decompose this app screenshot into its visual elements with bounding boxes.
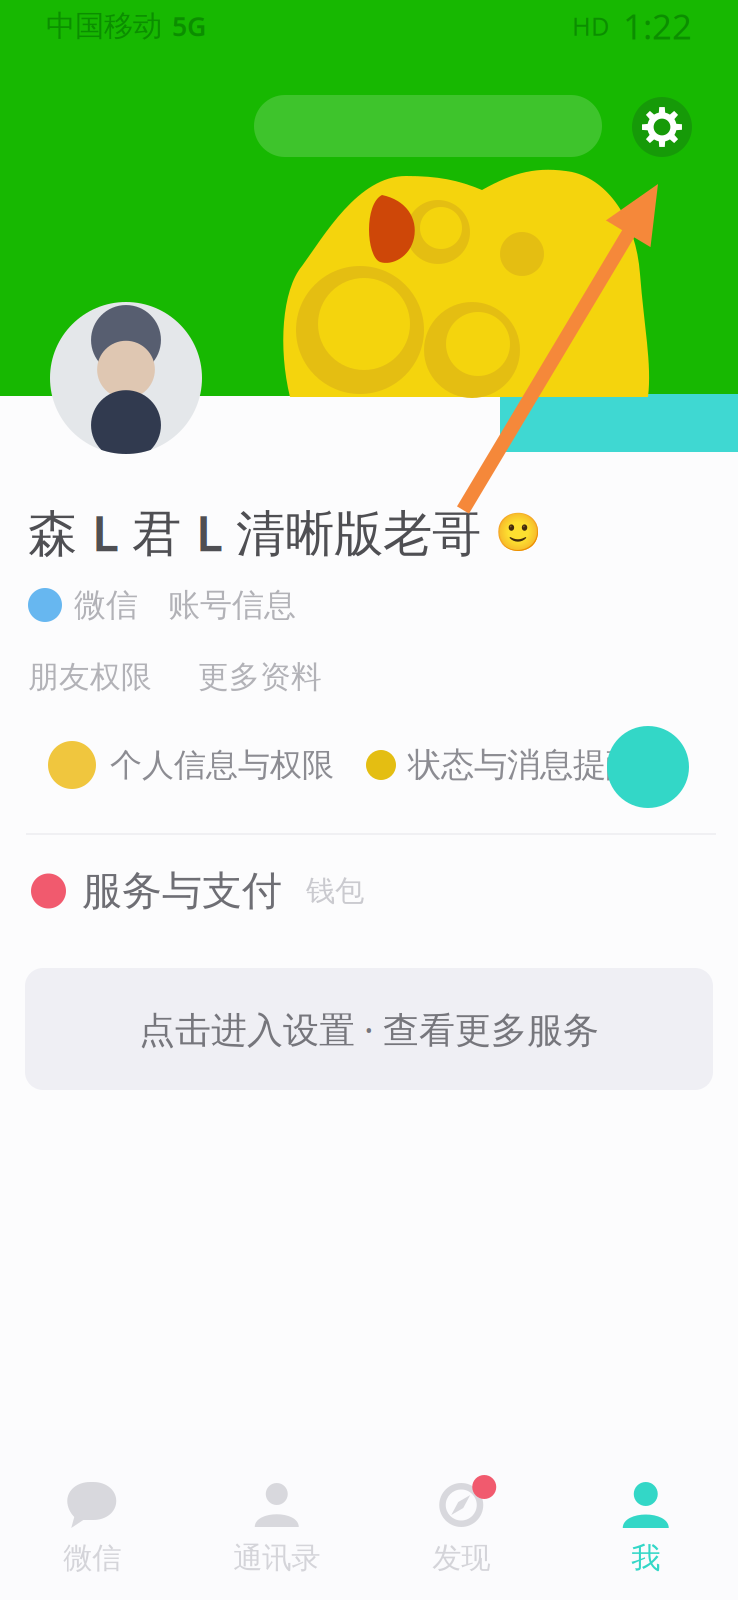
staticText: 🙂 [495, 511, 541, 553]
staticText: 钱包 [306, 873, 364, 909]
staticText: 个人信息与权限 [110, 745, 334, 785]
button[interactable]: 服务与支付 [31, 866, 491, 916]
staticText: 发现 [432, 1540, 490, 1576]
button[interactable]: 状态与消息提醒 [366, 730, 639, 800]
staticText: 微信 [63, 1540, 121, 1576]
staticText: 微信 [74, 585, 138, 625]
button[interactable]: 通讯录 [184, 1430, 369, 1600]
staticText: 森 L 君 L 清晰版老哥 [28, 499, 481, 565]
staticText: 1:22 [623, 3, 692, 49]
button[interactable]: 发现 [369, 1430, 553, 1600]
button[interactable]: 我 [553, 1430, 738, 1600]
staticText: 更多资料 [198, 658, 322, 696]
button[interactable]: Settings [632, 97, 692, 157]
staticText: 5G [172, 8, 206, 44]
staticText: 我 [631, 1540, 660, 1576]
button[interactable]: Profile photo [50, 302, 202, 454]
staticText: 账号信息 [168, 585, 296, 625]
staticText: 朋友权限 [28, 658, 152, 696]
button[interactable]: 个人信息与权限 [48, 730, 334, 800]
button[interactable]: 微信 [28, 586, 448, 624]
staticText: HD [572, 9, 609, 43]
staticText: 服务与支付 [82, 866, 282, 915]
staticText: 中国移动 [46, 8, 162, 44]
button[interactable]: 朋友权限 [28, 660, 448, 694]
staticText: 点击进入设置 · 查看更多服务 [139, 1005, 599, 1053]
staticText: 状态与消息提醒 [408, 744, 639, 785]
staticText: 通讯录 [233, 1540, 320, 1576]
button[interactable]: 森 L 君 L 清晰版老哥 [28, 504, 628, 560]
button[interactable]: Status [607, 726, 689, 808]
button[interactable]: 点击进入设置 · 查看更多服务 [25, 968, 713, 1090]
button[interactable]: 微信 [0, 1430, 184, 1600]
